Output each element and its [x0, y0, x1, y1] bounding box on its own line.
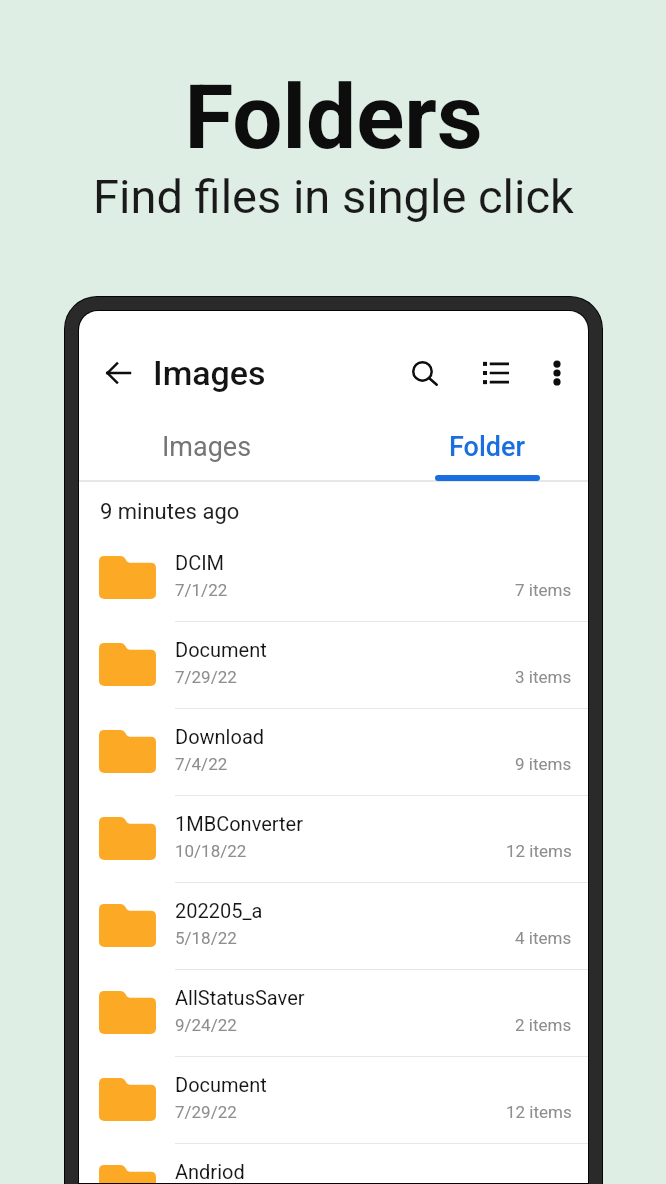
button[interactable]: 1MBConverter — [79, 795, 588, 882]
button[interactable]: Change list view — [472, 349, 520, 397]
button[interactable]: More options — [533, 349, 581, 397]
staticText: Document — [175, 638, 267, 661]
staticText: 12 items — [506, 841, 572, 861]
staticText: 3 items — [515, 667, 572, 687]
button[interactable]: Search — [401, 349, 449, 397]
staticText: 7/1/22 — [175, 580, 228, 600]
staticText: 12 items — [506, 1102, 572, 1122]
staticText: 5/18/22 — [175, 928, 237, 948]
button[interactable]: Back — [91, 349, 144, 397]
staticText: Download — [175, 725, 265, 748]
button[interactable]: 202205_a — [79, 882, 588, 969]
staticText: Find files in single click — [93, 169, 574, 224]
button[interactable]: Document — [79, 1056, 588, 1143]
staticText: Images — [153, 353, 266, 393]
staticText: Folder — [449, 431, 526, 463]
button[interactable]: Folder — [334, 415, 588, 479]
button[interactable]: AllStatusSaver — [79, 969, 588, 1056]
staticText: 4 items — [515, 928, 572, 948]
staticText: 7 items — [515, 580, 572, 600]
staticText: Andriod — [175, 1160, 245, 1183]
staticText: 9 items — [515, 754, 572, 774]
staticText: 7/4/22 — [175, 754, 228, 774]
staticText: 10/18/22 — [175, 841, 247, 861]
staticText: 9/24/22 — [175, 1015, 237, 1035]
staticText: Document — [175, 1073, 267, 1096]
staticText: 2 items — [515, 1015, 572, 1035]
button[interactable]: Andriod — [79, 1143, 588, 1183]
staticText: 202205_a — [175, 899, 263, 922]
staticText: 9 minutes ago — [100, 499, 240, 525]
staticText: AllStatusSaver — [175, 986, 305, 1009]
button[interactable]: DCIM — [79, 534, 588, 621]
button[interactable]: Images — [79, 415, 334, 479]
button[interactable]: Document — [79, 621, 588, 708]
staticText: 1MBConverter — [175, 812, 303, 835]
staticText: 7/29/22 — [175, 667, 237, 687]
staticText: 7/29/22 — [175, 1102, 237, 1122]
staticText: DCIM — [175, 551, 225, 574]
button[interactable]: Download — [79, 708, 588, 795]
staticText: Images — [162, 431, 252, 463]
staticText: Folders — [184, 65, 483, 169]
